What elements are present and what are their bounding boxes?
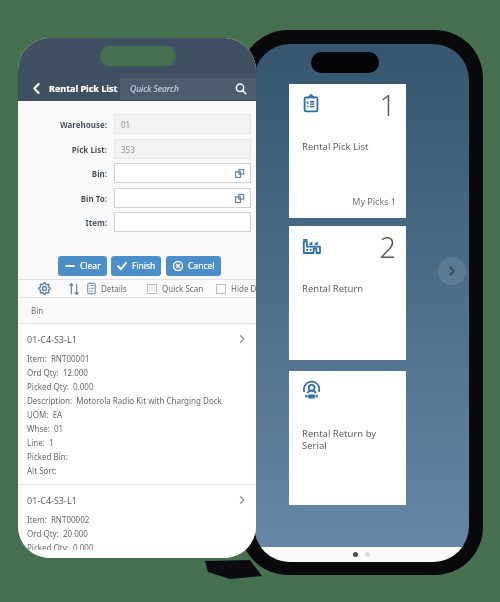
staticText: Quick Search xyxy=(130,83,179,95)
staticText: 01-C4-S3-L1 xyxy=(27,494,77,506)
staticText: Picked Qty: 0.000 xyxy=(27,381,94,392)
staticText: Details xyxy=(101,283,127,294)
staticText: 353 xyxy=(121,144,135,155)
staticText: Pick List: xyxy=(41,144,107,155)
staticText: 01 xyxy=(121,119,131,130)
button[interactable] xyxy=(114,212,251,232)
staticText: Bin xyxy=(31,305,44,316)
staticText: Picked Bin: xyxy=(27,451,68,462)
staticText: Whse: 01 xyxy=(27,423,64,434)
button[interactable]: Quick Search xyxy=(120,78,256,100)
button[interactable]: 1 xyxy=(289,84,406,218)
button[interactable]: Hide D xyxy=(216,280,256,297)
button[interactable]: Details xyxy=(86,280,127,297)
staticText: Bin: xyxy=(41,168,107,179)
staticText: Bin To: xyxy=(41,193,107,204)
button[interactable]: Settings xyxy=(36,280,53,297)
staticText: Rental Return xyxy=(302,282,364,295)
staticText: 2 xyxy=(373,227,396,266)
staticText: Picked Qty: 0.000 xyxy=(27,542,94,550)
staticText: Ord Qty: 20.000 xyxy=(27,528,88,539)
staticText: Item: xyxy=(41,217,107,228)
button[interactable] xyxy=(114,163,251,183)
button[interactable]: 01-C4-S3-L1 xyxy=(18,485,256,558)
button[interactable]: 2 xyxy=(289,226,406,360)
staticText: Rental Return by Serial xyxy=(302,427,377,452)
button[interactable]: Finish xyxy=(111,256,161,276)
button[interactable]: Clear xyxy=(58,256,107,276)
staticText: Clear xyxy=(80,260,101,272)
button[interactable]: Cancel xyxy=(166,256,221,276)
staticText: Hide D xyxy=(231,283,256,294)
staticText: Rental Pick List xyxy=(302,140,369,153)
button[interactable]: Quick Scan xyxy=(147,280,204,297)
button[interactable]: 01-C4-S3-L1 xyxy=(18,324,256,484)
staticText: Description: Motorola Radio Kit with Cha… xyxy=(27,395,222,406)
button[interactable]: Back xyxy=(25,77,47,99)
staticText: Finish xyxy=(132,260,156,272)
button[interactable]: Rental Return by Serial xyxy=(289,371,406,505)
staticText: 1 xyxy=(373,85,396,124)
button[interactable]: Next page xyxy=(438,257,466,285)
staticText: UOM: EA xyxy=(27,409,63,420)
staticText: Item: RNT00002 xyxy=(27,514,90,525)
staticText: Ord Qty: 12.000 xyxy=(27,367,88,378)
staticText: My Picks 1 xyxy=(333,195,396,207)
staticText: Line: 1 xyxy=(27,437,54,448)
staticText: Alt Sort: xyxy=(27,465,57,476)
button[interactable]: 353 xyxy=(114,139,251,159)
staticText: Rental Pick List xyxy=(49,82,118,94)
button[interactable]: Sort xyxy=(65,280,82,297)
button[interactable] xyxy=(114,188,251,208)
staticText: 01-C4-S3-L1 xyxy=(27,333,77,345)
staticText: Warehouse: xyxy=(41,119,107,130)
staticText: Cancel xyxy=(188,260,215,272)
staticText: Quick Scan xyxy=(162,283,204,294)
button[interactable]: 01 xyxy=(114,114,251,134)
staticText: Item: RNT00001 xyxy=(27,353,90,364)
